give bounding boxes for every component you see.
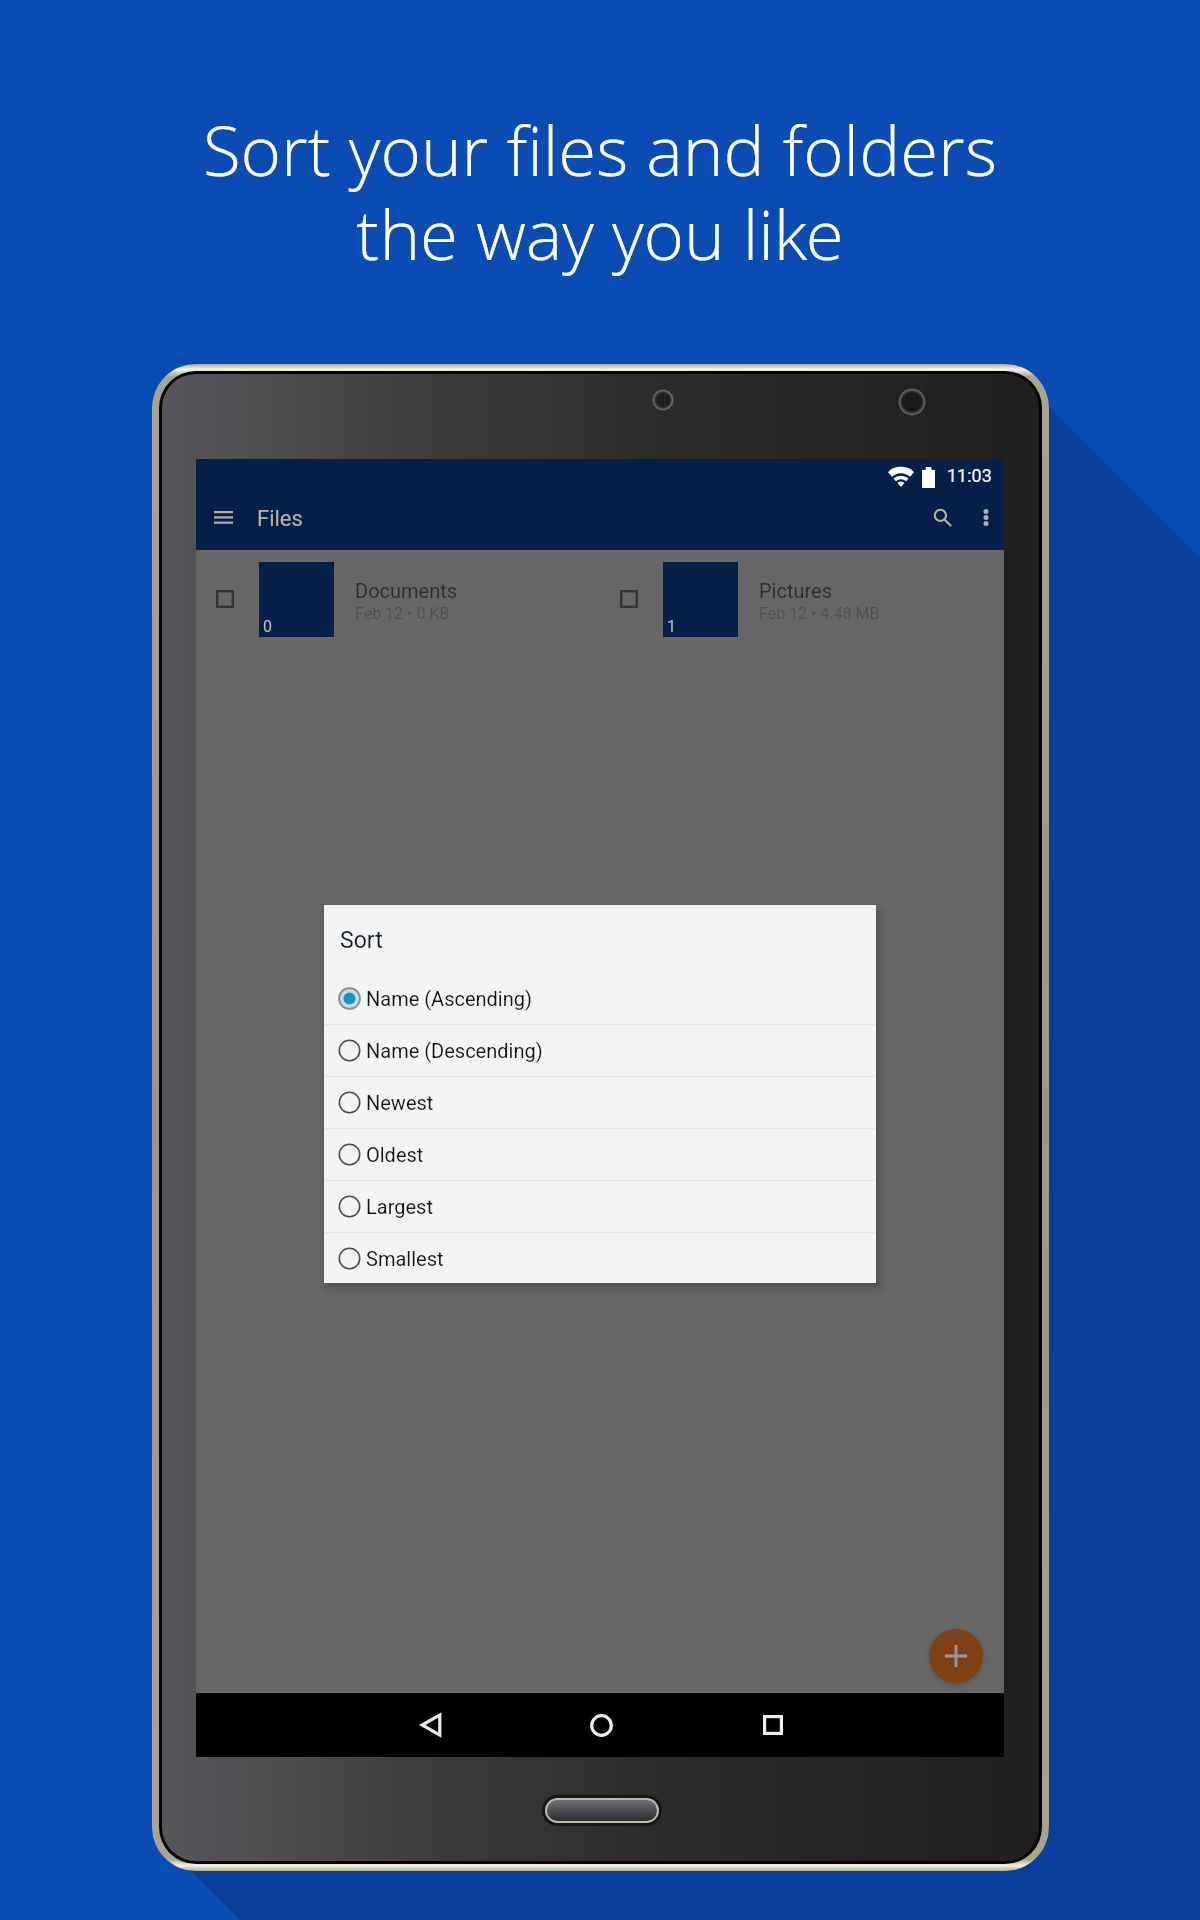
button[interactable]: Name (Descending) [324,1025,876,1076]
button[interactable]: Name (Ascending) [324,972,876,1024]
staticText: Name (Ascending) [366,987,532,1010]
staticText: Files [257,506,303,532]
button[interactable]: Add [929,1629,983,1683]
button[interactable]: Smallest [324,1233,876,1283]
staticText: Name (Descending) [366,1039,543,1062]
button[interactable]: Search [919,494,967,542]
staticText: 11:03 [947,465,992,486]
staticText: Oldest [366,1143,424,1166]
staticText: Sort [340,927,383,954]
button[interactable]: More options [962,494,1010,542]
button[interactable]: Home [571,1695,631,1755]
button[interactable]: Navigation menu [199,493,247,541]
button[interactable]: 1 [600,550,1004,646]
button[interactable]: Back [401,1695,461,1755]
staticText: Feb 12 • 4.48 MB [759,604,880,623]
button[interactable]: 0 [196,550,600,646]
staticText: Pictures [759,579,833,602]
staticText: 1 [667,617,676,636]
staticText: Largest [366,1195,433,1218]
button[interactable]: Recent apps [743,1695,803,1755]
button[interactable]: Largest [324,1181,876,1232]
staticText: Sort your files and folders the way you … [0,102,1200,280]
button[interactable]: Oldest [324,1129,876,1180]
staticText: Documents [355,579,458,602]
staticText: 0 [263,617,272,636]
staticText: Feb 12 • 0 KB [355,604,450,623]
staticText: Smallest [366,1247,444,1270]
button[interactable]: Newest [324,1077,876,1128]
staticText: Newest [366,1091,434,1114]
